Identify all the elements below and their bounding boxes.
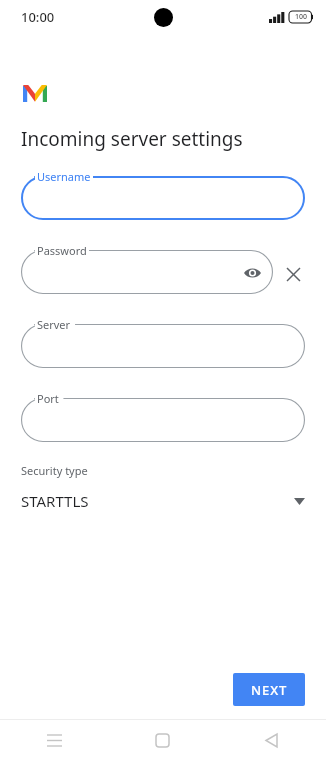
button[interactable]: Back: [217, 720, 326, 760]
button[interactable]: Port: [21, 398, 305, 442]
button[interactable]: Home: [108, 720, 217, 760]
staticText: 100: [295, 12, 308, 22]
staticText: Username: [37, 169, 91, 184]
staticText: Incoming server settings: [21, 126, 243, 152]
staticText: STARTTLS: [21, 491, 294, 511]
button[interactable]: Clear: [281, 262, 306, 287]
button[interactable]: Password: [21, 250, 273, 294]
button[interactable]: Security type: [21, 463, 305, 511]
button[interactable]: Username: [21, 176, 305, 220]
button[interactable]: Recent apps: [0, 720, 108, 760]
staticText: Security type: [21, 463, 88, 478]
staticText: 10:00: [21, 8, 55, 26]
button[interactable]: Server: [21, 324, 305, 368]
button[interactable]: NEXT: [233, 673, 305, 706]
staticText: Server: [37, 317, 71, 332]
staticText: NEXT: [251, 681, 288, 699]
button[interactable]: Show password: [240, 260, 265, 285]
staticText: Port: [37, 391, 59, 406]
staticText: Password: [37, 243, 87, 258]
